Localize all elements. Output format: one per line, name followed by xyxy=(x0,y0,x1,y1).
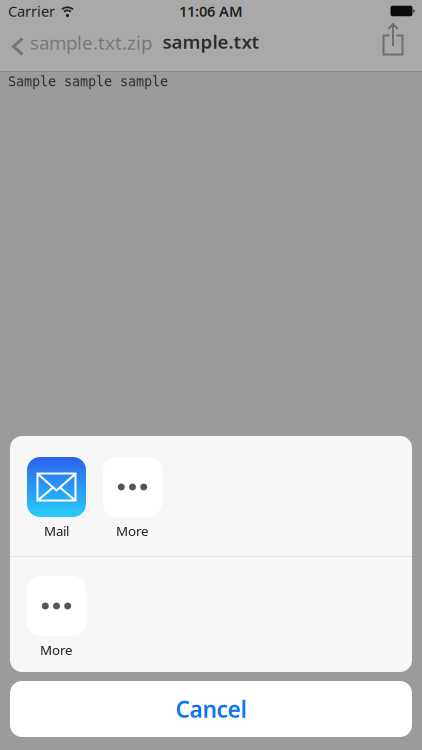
staticText: sample.txt.zip xyxy=(30,30,152,55)
staticText: More xyxy=(116,522,149,540)
staticText: Carrier xyxy=(8,1,55,21)
staticText: 11:06 AM xyxy=(179,1,243,21)
staticText: More xyxy=(40,641,73,659)
button[interactable]: Share xyxy=(376,29,422,63)
button[interactable]: Mail xyxy=(27,457,86,540)
button[interactable]: More xyxy=(27,576,86,659)
staticText: Cancel xyxy=(175,694,246,724)
staticText: Sample sample sample xyxy=(8,74,168,89)
staticText: sample.txt xyxy=(162,29,259,54)
button[interactable]: More xyxy=(103,457,162,540)
staticText: Mail xyxy=(44,522,69,540)
button[interactable]: Cancel xyxy=(10,681,412,737)
button[interactable]: sample.txt.zip xyxy=(0,34,152,59)
